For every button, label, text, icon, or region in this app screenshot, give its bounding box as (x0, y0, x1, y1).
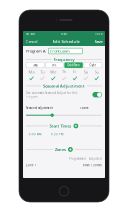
staticText: Save (94, 39, 102, 44)
button[interactable]: Int. (45, 62, 63, 68)
button[interactable]: Mo (26, 70, 37, 80)
button[interactable]: Su (91, 70, 102, 80)
button[interactable]: Add Start Times (73, 123, 79, 129)
button[interactable]: Fr (69, 70, 80, 80)
staticText: 100% (94, 32, 102, 36)
staticText: Seasonal Adjustment (43, 83, 85, 89)
button[interactable]: Odd/Even (65, 62, 83, 68)
button[interactable]: We (48, 70, 59, 80)
staticText: Front Lawn (50, 48, 69, 54)
staticText: Odd/Even (67, 63, 80, 67)
staticText: 6:00 AM (29, 132, 41, 136)
staticText: Frequency (53, 57, 74, 62)
staticText: Mo (28, 69, 34, 74)
staticText: Programmed Adjusted (69, 157, 102, 160)
staticText: Seasonal adjustment (26, 106, 53, 110)
staticText: 6:30 PM (51, 132, 63, 136)
button[interactable]: Cancel (25, 39, 37, 44)
staticText: Sa (84, 69, 88, 74)
staticText: Cancel (25, 39, 37, 44)
button[interactable]: Add Zones (68, 147, 73, 152)
button[interactable]: 6:30 PM (48, 132, 66, 136)
staticText: We (50, 69, 56, 74)
staticText: Start Times (49, 123, 71, 129)
staticText: 8min / 30min (83, 163, 102, 167)
button[interactable]: Front Lawn (48, 48, 82, 54)
staticText: Int. (52, 63, 57, 67)
staticText: Fr (73, 69, 77, 74)
staticText: Th (62, 69, 66, 74)
button[interactable]: 6:00 AM (26, 132, 44, 136)
staticText: Zone 1 (26, 163, 37, 167)
staticText: Su (95, 69, 99, 74)
button[interactable]: Th (59, 70, 69, 80)
staticText: Use automatic Seasonal Adjust for this P… (26, 91, 77, 98)
button[interactable]: Tu (37, 70, 48, 80)
button[interactable]: Seasonal adjust (92, 92, 102, 97)
staticText: Tu (40, 69, 44, 74)
staticText: 100% (80, 106, 88, 110)
staticText: Days (32, 63, 37, 67)
button[interactable]: Save (94, 39, 102, 44)
staticText: Edit Schedule (52, 39, 79, 44)
button[interactable]: Cycle (84, 62, 102, 68)
staticText: No SIM (25, 32, 34, 36)
button[interactable]: Sa (80, 70, 91, 80)
staticText: Zones (55, 147, 66, 152)
button[interactable]: Days (26, 62, 44, 68)
staticText: Cycle (89, 63, 96, 67)
staticText: 9:41 (61, 32, 68, 36)
staticText: Program A (26, 48, 46, 54)
